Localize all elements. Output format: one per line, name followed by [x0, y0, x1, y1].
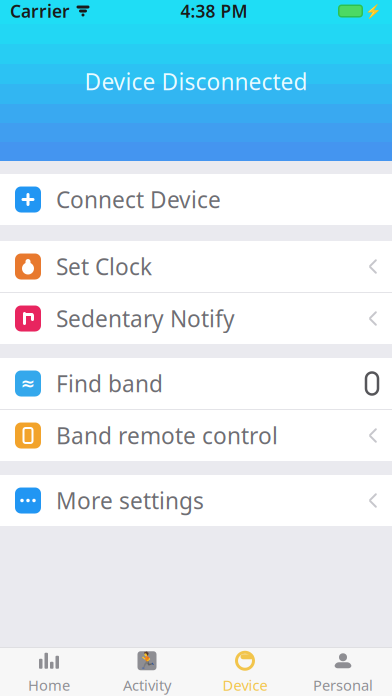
staticText: Sedentary Notify: [56, 303, 235, 333]
staticText: Home: [28, 675, 70, 695]
staticText: Connect Device: [56, 184, 221, 214]
button[interactable]: Device: [196, 648, 294, 696]
button[interactable]: Home: [0, 648, 98, 696]
staticText: Band remote control: [56, 420, 278, 450]
staticText: More settings: [56, 485, 204, 515]
button[interactable]: Personal: [294, 648, 392, 696]
staticText: Find band: [56, 368, 163, 398]
button[interactable]: More settings: [0, 475, 392, 526]
staticText: ⚡: [365, 3, 382, 19]
staticText: 🏃: [137, 652, 157, 670]
button[interactable]: Sedentary Notify: [0, 293, 392, 344]
button[interactable]: 🏃: [98, 648, 196, 696]
button[interactable]: ≈: [0, 358, 392, 409]
button[interactable]: Set Clock: [0, 241, 392, 292]
staticText: Personal: [313, 675, 373, 695]
staticText: ≈: [20, 374, 35, 393]
button[interactable]: Band remote control: [0, 410, 392, 461]
button[interactable]: Connect Device: [0, 174, 392, 225]
staticText: Set Clock: [56, 251, 152, 281]
staticText: Device: [222, 675, 267, 695]
staticText: Activity: [123, 675, 171, 695]
staticText: 4:38 PM: [180, 0, 247, 22]
staticText: Carrier: [10, 0, 70, 22]
staticText: Device Disconnected: [84, 66, 307, 96]
